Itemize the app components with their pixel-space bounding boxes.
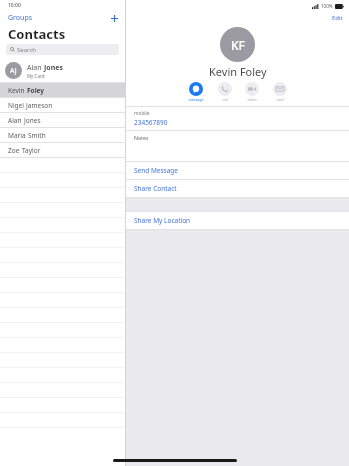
- staticText: Jones: [24, 116, 41, 125]
- button[interactable]: Maria: [0, 128, 125, 143]
- staticText: call: [222, 97, 228, 102]
- staticText: Groups: [8, 13, 33, 23]
- staticText: My Card: [27, 73, 45, 79]
- button[interactable]: AJ: [0, 59, 125, 82]
- button[interactable]: video: [244, 82, 260, 102]
- staticText: KF: [231, 37, 245, 53]
- staticText: Jameson: [26, 101, 53, 110]
- staticText: Edit: [332, 14, 343, 22]
- button[interactable]: Send Message: [126, 162, 349, 179]
- staticText: Jones: [44, 63, 63, 73]
- button[interactable]: Edit: [326, 12, 349, 24]
- staticText: message: [188, 97, 204, 102]
- staticText: video: [247, 97, 257, 102]
- staticText: Contacts: [8, 25, 66, 43]
- staticText: 100%: [321, 3, 333, 9]
- button[interactable]: Add contact: [104, 13, 125, 24]
- button[interactable]: Groups: [0, 11, 41, 25]
- staticText: Kevin Foley: [209, 64, 267, 79]
- staticText: Zoe: [8, 146, 22, 155]
- button[interactable]: Share Contact: [126, 180, 349, 197]
- button[interactable]: Search: [6, 44, 119, 55]
- staticText: AJ: [10, 66, 17, 76]
- staticText: Maria: [8, 131, 28, 140]
- staticText: Search: [17, 46, 36, 54]
- staticText: mobile: [134, 110, 150, 117]
- button[interactable]: call: [217, 82, 233, 102]
- staticText: Share Contact: [134, 184, 177, 193]
- staticText: Notes: [134, 134, 149, 141]
- staticText: Alan: [27, 63, 44, 73]
- button[interactable]: mail: [272, 82, 288, 102]
- button[interactable]: message: [187, 82, 205, 102]
- staticText: Alan: [8, 116, 24, 125]
- button[interactable]: Zoe: [0, 143, 125, 158]
- button[interactable]: Alan: [0, 113, 125, 128]
- staticText: Taylor: [22, 146, 41, 155]
- button[interactable]: Kevin: [0, 83, 125, 98]
- staticText: Foley: [27, 86, 45, 95]
- button[interactable]: Nigel: [0, 98, 125, 113]
- button[interactable]: Notes: [126, 131, 349, 161]
- staticText: 234567890: [134, 118, 168, 127]
- staticText: Kevin: [8, 86, 27, 95]
- button[interactable]: Share My Location: [126, 212, 349, 229]
- staticText: 10:00: [8, 2, 21, 9]
- staticText: Send Message: [134, 166, 179, 175]
- staticText: Nigel: [8, 101, 26, 110]
- staticText: Share My Location: [134, 216, 191, 225]
- button[interactable]: mobile: [126, 107, 349, 130]
- staticText: mail: [276, 97, 284, 102]
- staticText: Smith: [28, 131, 46, 140]
